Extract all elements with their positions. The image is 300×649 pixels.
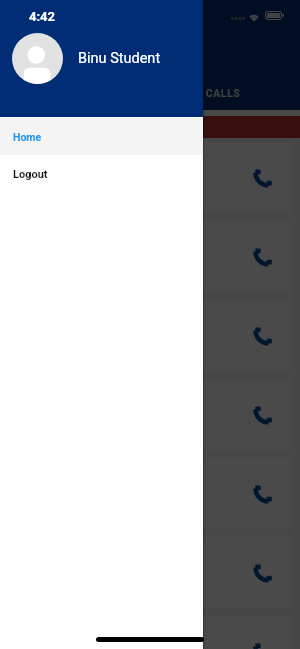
other: Call	[255, 406, 273, 423]
button[interactable]: Call	[8, 221, 292, 292]
other: Call	[255, 169, 273, 186]
button[interactable]: Call	[8, 142, 292, 213]
other: Call	[255, 327, 273, 344]
staticText: 4:42	[29, 9, 56, 24]
button[interactable]: Logout	[0, 155, 203, 193]
other: Call	[255, 248, 273, 265]
staticText: Logout	[13, 168, 48, 181]
button[interactable]: Call	[8, 300, 292, 371]
other: Call	[255, 485, 273, 502]
button[interactable]: Call	[8, 616, 292, 649]
other: Call	[255, 643, 273, 649]
button[interactable]: Home	[0, 118, 203, 155]
staticText: Home	[13, 131, 42, 143]
staticText: Binu Student	[78, 50, 161, 67]
other: Call	[255, 564, 273, 581]
button[interactable]: Call	[8, 537, 292, 608]
button[interactable]	[0, 0, 300, 649]
button[interactable]: Call	[8, 458, 292, 529]
button[interactable]: Call	[8, 379, 292, 450]
staticText: CALLS	[206, 88, 241, 100]
